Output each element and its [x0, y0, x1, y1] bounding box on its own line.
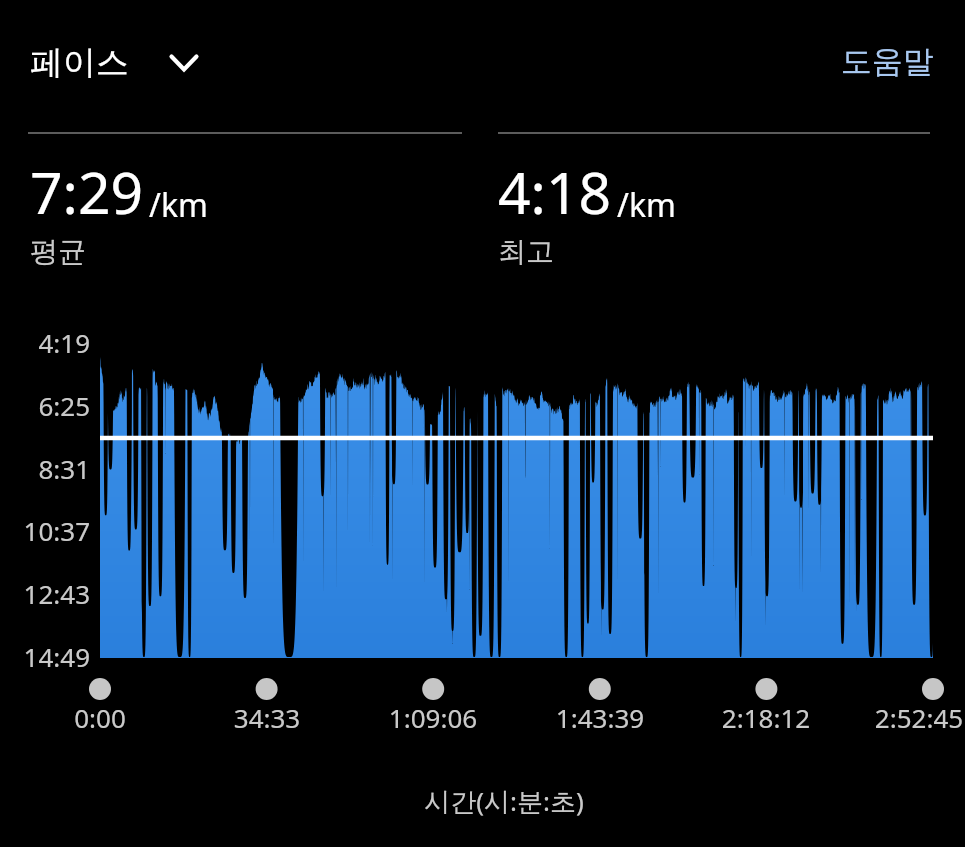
staticText: /km: [149, 183, 208, 227]
staticText: 7:29: [30, 153, 144, 231]
button[interactable]: 도움말: [832, 36, 943, 87]
staticText: /km: [617, 183, 676, 227]
staticText: 2:18:12: [676, 700, 856, 735]
staticText: 2:52:45: [829, 700, 965, 735]
staticText: 평균: [30, 234, 86, 269]
staticText: 페이스: [30, 42, 129, 84]
staticText: 34:33: [177, 700, 357, 735]
staticText: 4:19: [4, 325, 90, 360]
staticText: 시간(시:분:초): [304, 783, 704, 819]
staticText: 6:25: [4, 388, 90, 423]
staticText: 10:37: [4, 513, 90, 548]
staticText: 14:49: [4, 639, 90, 674]
staticText: 1:43:39: [510, 700, 690, 735]
staticText: 최고: [498, 234, 554, 269]
button[interactable]: 페이스 지표 선택: [18, 36, 211, 90]
staticText: 도움말: [841, 42, 934, 81]
staticText: 8:31: [4, 451, 90, 486]
staticText: 0:00: [10, 700, 190, 735]
staticText: 1:09:06: [343, 700, 523, 735]
staticText: 4:18: [498, 153, 612, 231]
staticText: 12:43: [4, 576, 90, 611]
